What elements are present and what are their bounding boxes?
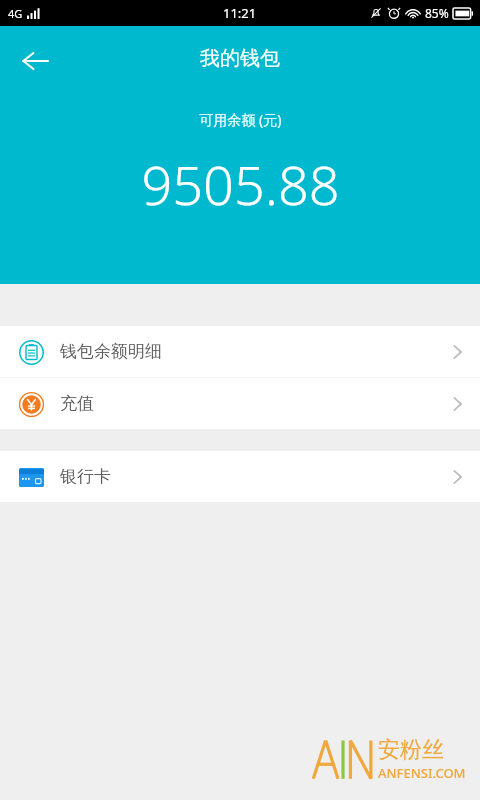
button[interactable]: 充值 [0, 378, 480, 429]
button[interactable]: 钱包余额明细 [0, 326, 480, 377]
staticText: 银行卡 [60, 466, 111, 487]
staticText: ANFENSI.COM [378, 764, 466, 782]
staticText: 9505.88 [141, 147, 340, 221]
staticText: 安粉丝 [378, 736, 444, 764]
staticText: 充值 [60, 393, 94, 414]
staticText: 4G [8, 6, 23, 21]
button[interactable]: 银行卡 [0, 451, 480, 502]
staticText: 85% [425, 5, 449, 21]
staticText: 可用余额 (元) [199, 110, 282, 129]
button[interactable]: Back [8, 34, 62, 88]
staticText: 11:21 [223, 4, 257, 22]
staticText: 钱包余额明细 [60, 341, 162, 362]
staticText: 我的钱包 [200, 46, 280, 71]
